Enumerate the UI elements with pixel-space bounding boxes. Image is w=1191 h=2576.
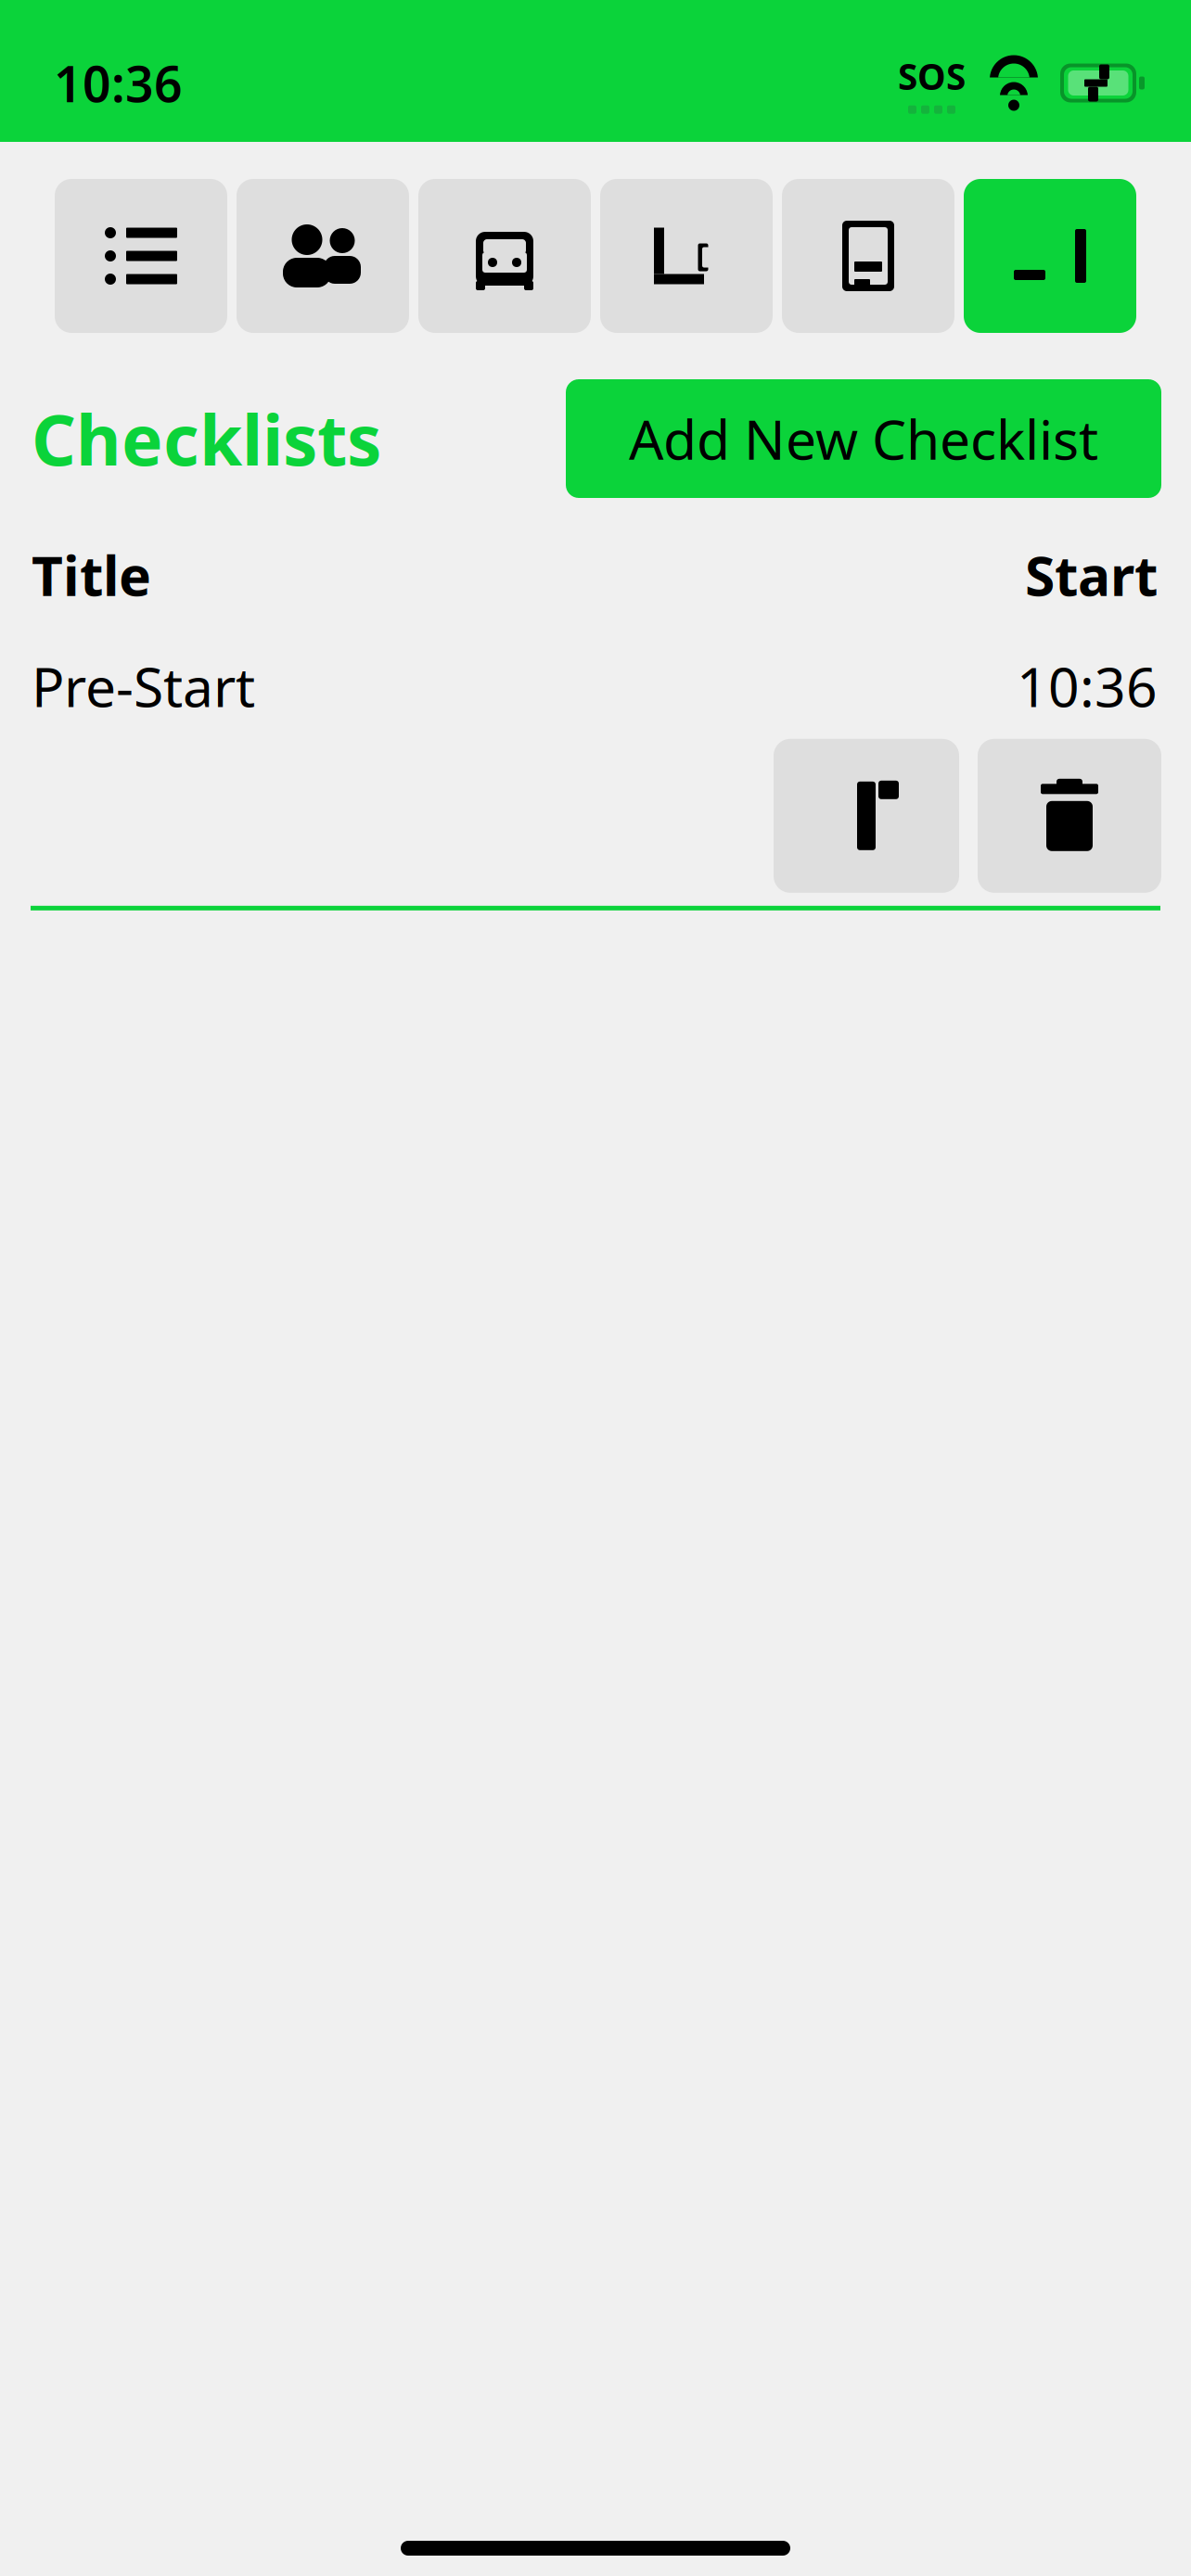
staticText: 10:36 [1017,650,1158,722]
staticText: Add New Checklist [629,402,1098,475]
button[interactable]: People [237,179,409,333]
staticText: SOS [898,52,966,100]
button[interactable]: Complete [964,179,1136,333]
button[interactable]: Transfer [600,179,773,333]
button[interactable]: Checklists [55,179,227,333]
staticText: Title [32,539,151,611]
button[interactable]: Add New Checklist [566,379,1161,498]
button[interactable]: Vehicles [418,179,591,333]
button[interactable]: Edit Pre-Start checklist [774,739,959,893]
staticText: Start [1025,539,1158,611]
staticText: 10:36 [54,50,183,116]
button[interactable]: Delete Pre-Start checklist [978,739,1161,893]
staticText: Checklists [32,393,381,485]
button[interactable]: Documents [782,179,954,333]
staticText: Pre-Start [32,650,255,722]
